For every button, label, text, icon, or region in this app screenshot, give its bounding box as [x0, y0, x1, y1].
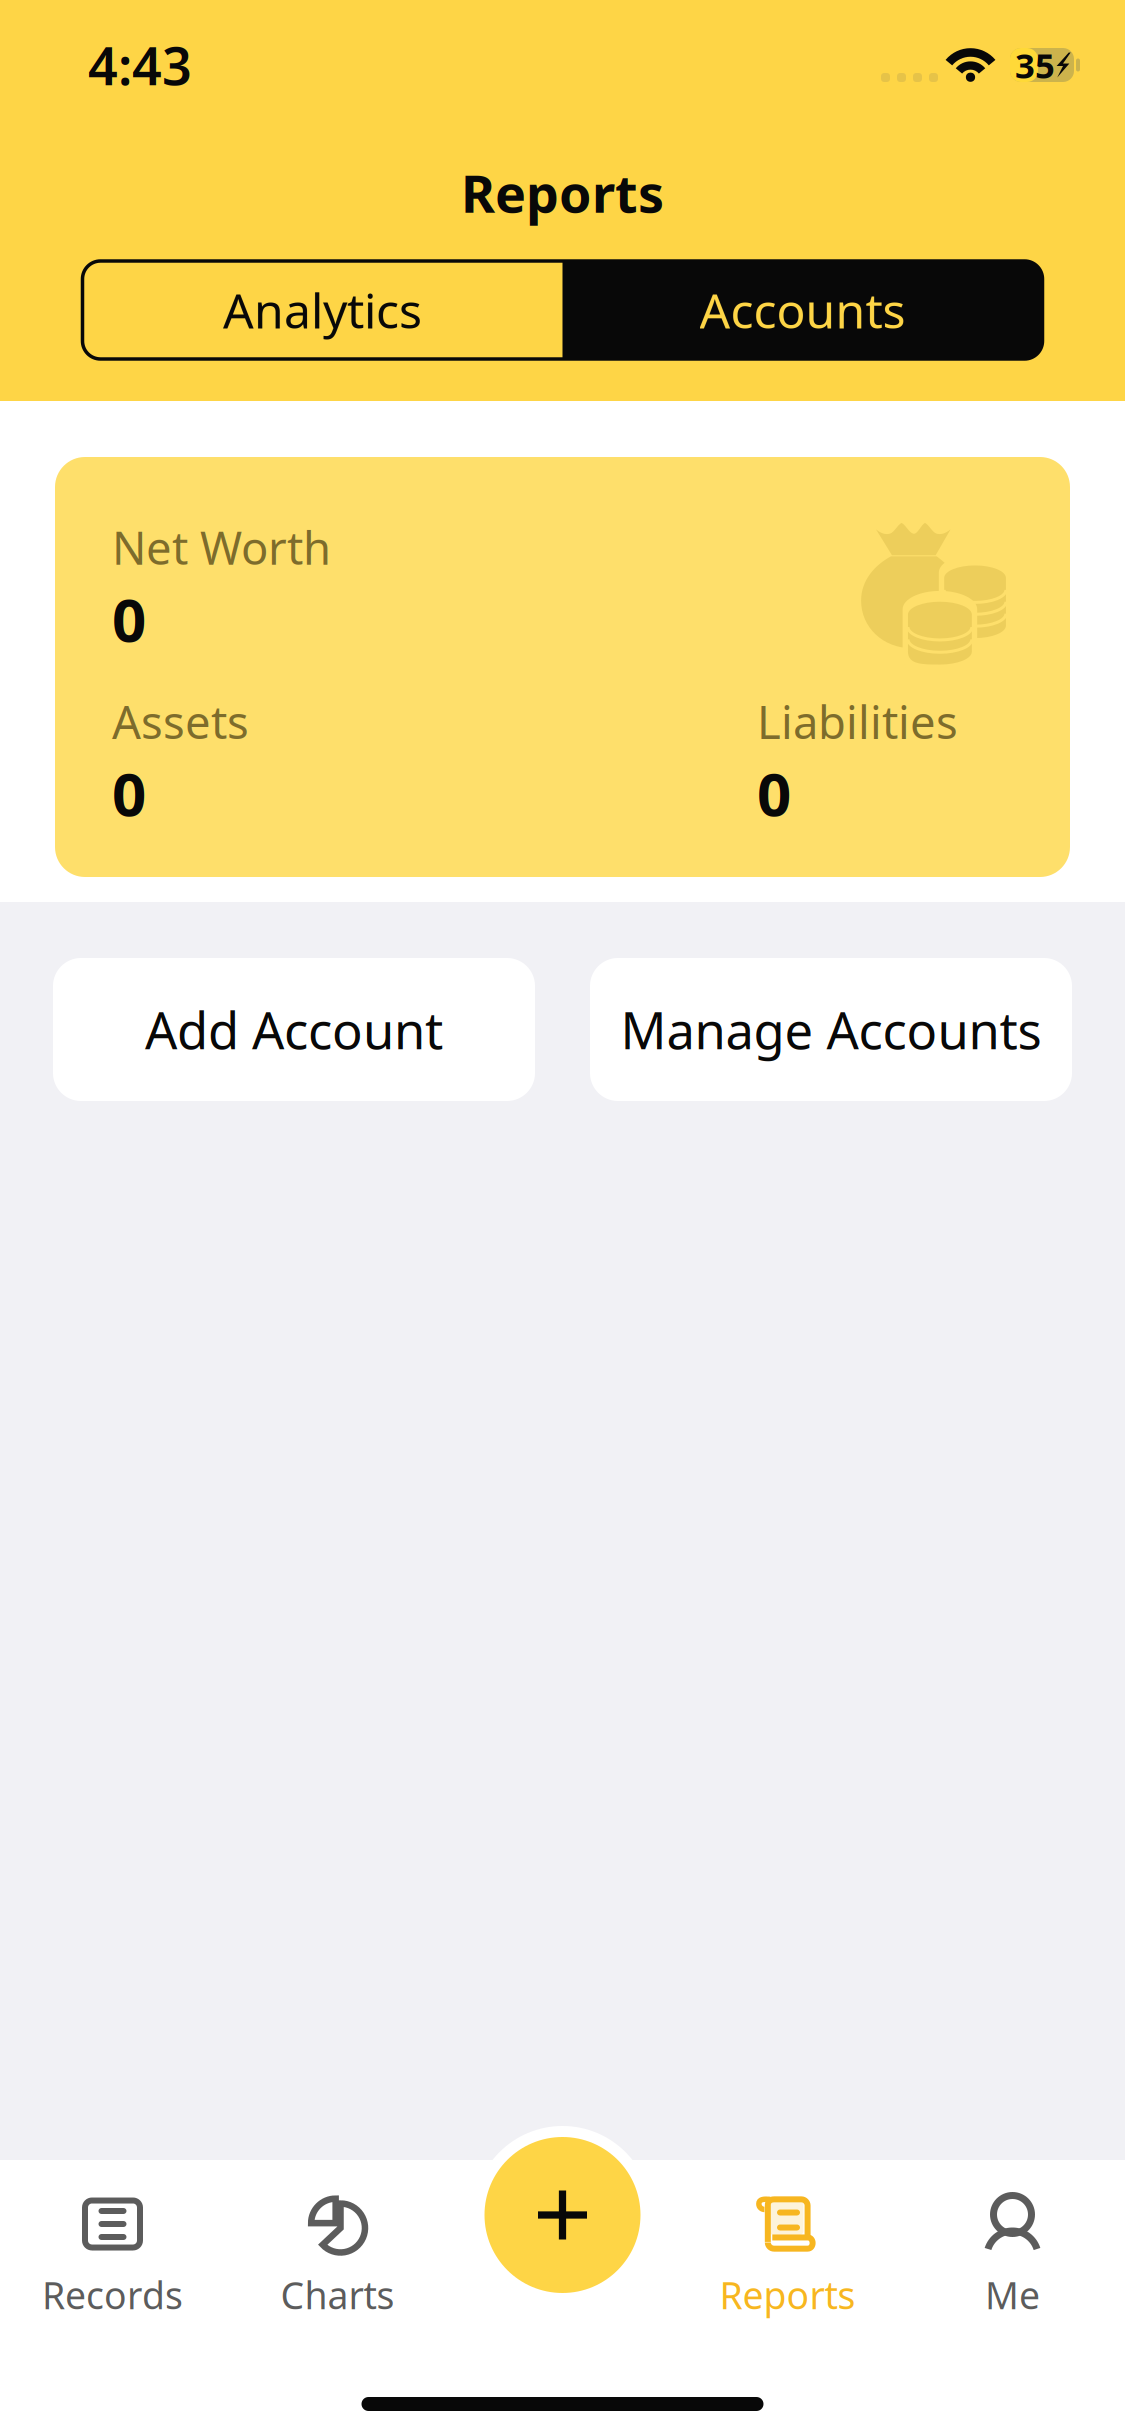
staticText: Reports	[719, 2270, 855, 2320]
staticText: 35	[1015, 42, 1055, 88]
button[interactable]: Analytics	[82, 261, 562, 359]
button[interactable]: Accounts	[562, 261, 1042, 359]
button[interactable]: Charts	[225, 2160, 450, 2436]
button[interactable]: Manage Accounts	[590, 958, 1072, 1101]
button[interactable]: Records	[0, 2160, 225, 2436]
button[interactable]: Add	[473, 2126, 651, 2304]
staticText: 0	[112, 753, 146, 833]
staticText: Liabilities	[757, 691, 958, 751]
button[interactable]: Add Account	[53, 958, 535, 1101]
staticText: Charts	[280, 2270, 394, 2320]
staticText: Assets	[112, 691, 249, 751]
staticText: 0	[757, 753, 791, 833]
staticText: 4:43	[88, 30, 192, 100]
staticText: 0	[112, 579, 146, 659]
staticText: Analytics	[223, 278, 422, 342]
staticText: Net Worth	[112, 517, 331, 577]
staticText: Manage Accounts	[620, 996, 1041, 1063]
staticText: Accounts	[699, 278, 905, 342]
staticText: Add Account	[145, 996, 443, 1063]
staticText: Me	[985, 2270, 1040, 2320]
staticText: Records	[42, 2270, 183, 2320]
button[interactable]: Me	[900, 2160, 1125, 2436]
button[interactable]: Reports	[675, 2160, 900, 2436]
staticText: Reports	[461, 158, 664, 227]
